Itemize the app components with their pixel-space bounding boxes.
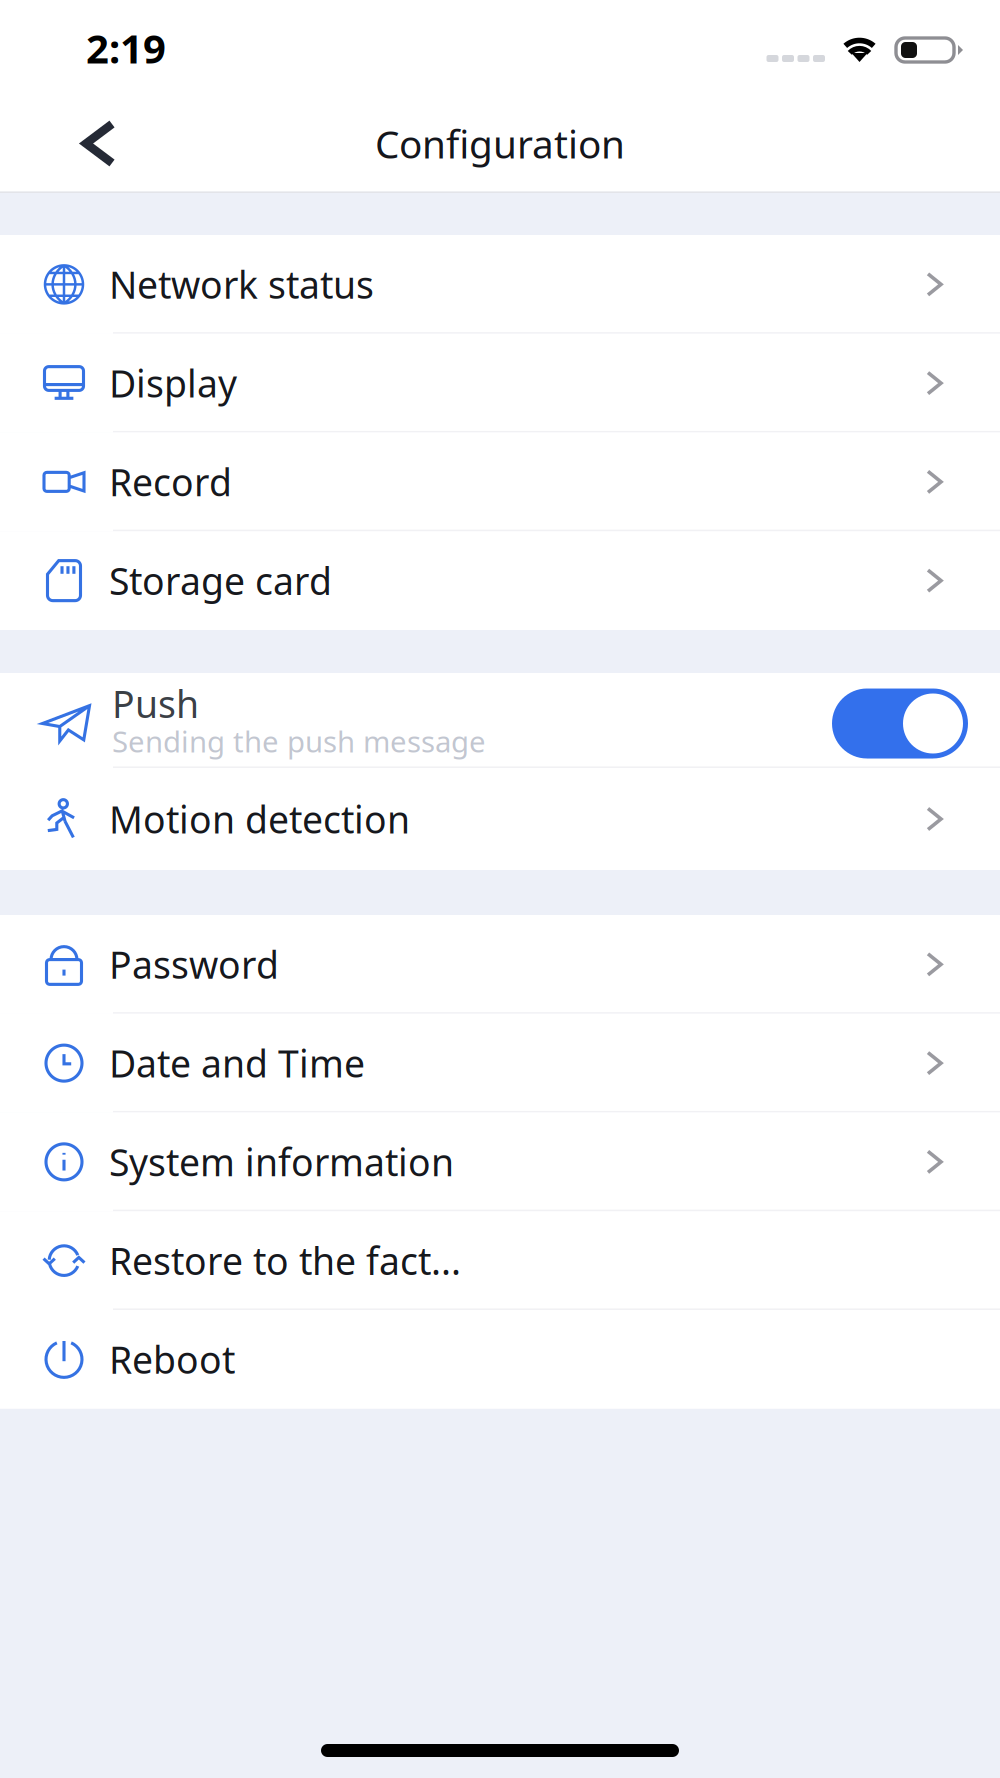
button[interactable]: Restore to the fact... xyxy=(0,1211,1000,1310)
staticText: Record xyxy=(109,457,232,507)
staticText: Sending the push message xyxy=(112,721,486,760)
staticText: System information xyxy=(109,1137,454,1187)
staticText: Network status xyxy=(109,260,374,309)
button[interactable]: Storage card xyxy=(0,531,1000,630)
button[interactable]: Motion detection xyxy=(0,768,1000,870)
staticText: Storage card xyxy=(109,556,332,605)
button[interactable]: Date and Time xyxy=(0,1014,1000,1113)
staticText: Motion detection xyxy=(109,794,410,844)
button[interactable]: Network status xyxy=(0,235,1000,334)
staticText: Restore to the fact... xyxy=(109,1236,461,1285)
button[interactable]: Reboot xyxy=(0,1310,1000,1409)
button[interactable]: Record xyxy=(0,432,1000,531)
staticText: Password xyxy=(109,940,279,989)
staticText: Reboot xyxy=(109,1335,235,1384)
staticText: Push xyxy=(112,679,199,728)
staticText: Configuration xyxy=(375,118,625,169)
staticText: Date and Time xyxy=(109,1038,365,1088)
button[interactable]: Back xyxy=(56,99,142,188)
staticText: 2:19 xyxy=(86,21,166,74)
staticText: Display xyxy=(109,358,237,408)
button[interactable]: Password xyxy=(0,915,1000,1014)
button[interactable]: Display xyxy=(0,334,1000,433)
button[interactable]: Push xyxy=(0,673,1000,768)
button[interactable]: System information xyxy=(0,1112,1000,1211)
